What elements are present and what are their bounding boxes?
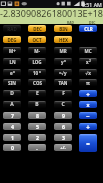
- button[interactable]: 2: [28, 134, 46, 141]
- button[interactable]: .: [28, 144, 46, 151]
- button[interactable]: TAN: [54, 79, 72, 86]
- staticText: 5: [36, 123, 39, 130]
- staticText: 0: [11, 144, 14, 151]
- staticText: A: [10, 101, 14, 108]
- staticText: RAD: [7, 26, 17, 32]
- staticText: x: [86, 59, 89, 65]
- button[interactable]: E: [28, 90, 46, 97]
- staticText: TAN: [58, 80, 68, 86]
- button[interactable]: Minus: [79, 112, 97, 119]
- staticText: BIN: [59, 26, 68, 32]
- button[interactable]: Plus: [79, 123, 97, 130]
- staticText: M-: [34, 48, 40, 54]
- staticText: C: [61, 101, 65, 108]
- staticText: 9:51 AM: [82, 1, 102, 8]
- button[interactable]: 7: [3, 112, 21, 119]
- button[interactable]: LOG: [28, 58, 46, 65]
- staticText: 7: [11, 112, 14, 119]
- button[interactable]: Equals: [79, 134, 97, 152]
- button[interactable]: SIN: [3, 79, 21, 86]
- staticText: 3: [62, 134, 65, 141]
- staticText: 10: [33, 70, 39, 76]
- staticText: ÷: [86, 90, 90, 97]
- staticText: DEC: [33, 26, 42, 32]
- staticText: 2: [89, 59, 91, 63]
- button[interactable]: A: [3, 101, 21, 108]
- button[interactable]: CLR: [79, 25, 97, 32]
- staticText: D: [10, 90, 14, 97]
- staticText: 2: [36, 134, 39, 141]
- staticText: LN: [9, 59, 16, 65]
- button[interactable]: COS: [28, 79, 46, 86]
- button[interactable]: MR: [54, 47, 72, 54]
- button[interactable]: M+: [3, 47, 21, 54]
- button[interactable]: 4: [3, 123, 21, 130]
- button[interactable]: ˣ√y: [54, 69, 72, 76]
- staticText: 9: [62, 112, 65, 119]
- staticText: F: [62, 90, 65, 97]
- staticText: MR: [59, 48, 67, 54]
- button[interactable]: MC: [79, 47, 97, 54]
- staticText: DEC: [89, 20, 96, 24]
- staticText: 8: [36, 112, 39, 119]
- staticText: DEG: [7, 37, 17, 43]
- staticText: HEX: [59, 37, 68, 43]
- button[interactable]: x: [79, 58, 97, 65]
- staticText: ˣ√y: [59, 70, 67, 76]
- button[interactable]: F: [54, 90, 72, 97]
- button[interactable]: 6: [54, 123, 72, 130]
- button[interactable]: LN: [3, 58, 21, 65]
- staticText: e: [10, 70, 13, 76]
- staticText: +/-: [60, 145, 66, 151]
- staticText: RAD: [67, 20, 74, 24]
- button[interactable]: B: [28, 101, 46, 108]
- button[interactable]: RAD: [3, 25, 21, 32]
- staticText: LOG: [32, 59, 42, 65]
- staticText: =: [86, 139, 90, 147]
- staticText: ×: [86, 101, 90, 108]
- button[interactable]: Multiply: [79, 101, 97, 108]
- button[interactable]: OCT: [28, 36, 46, 43]
- staticText: E: [36, 90, 39, 97]
- staticText: -2.83090826180013E+18: [0, 7, 103, 19]
- button[interactable]: 10: [28, 69, 46, 76]
- button[interactable]: e: [3, 69, 21, 76]
- staticText: 6: [62, 123, 65, 130]
- button[interactable]: π: [79, 79, 97, 86]
- button[interactable]: DEC: [28, 25, 46, 32]
- staticText: +: [86, 123, 90, 130]
- staticText: √x: [85, 70, 91, 76]
- staticText: MC: [84, 48, 92, 54]
- button[interactable]: 8: [28, 112, 46, 119]
- staticText: −: [86, 112, 90, 119]
- button[interactable]: 5: [28, 123, 46, 130]
- staticText: x: [39, 70, 41, 74]
- staticText: .: [36, 144, 38, 151]
- button[interactable]: 0: [3, 144, 21, 151]
- button[interactable]: 3: [54, 134, 72, 141]
- button[interactable]: M-: [28, 47, 46, 54]
- button[interactable]: Divide: [79, 90, 97, 97]
- staticText: CLR: [84, 26, 93, 32]
- staticText: x: [64, 59, 66, 63]
- staticText: SIN: [8, 80, 16, 86]
- button[interactable]: √x: [79, 69, 97, 76]
- button[interactable]: C: [54, 101, 72, 108]
- button[interactable]: 1: [3, 134, 21, 141]
- staticText: B: [35, 101, 39, 108]
- staticText: y: [61, 59, 64, 65]
- staticText: π: [86, 79, 90, 86]
- button[interactable]: DEG: [3, 36, 21, 43]
- staticText: OCT: [32, 37, 42, 43]
- button[interactable]: y: [54, 58, 72, 65]
- button[interactable]: HEX: [54, 36, 72, 43]
- button[interactable]: 9: [54, 112, 72, 119]
- staticText: COS: [33, 80, 42, 86]
- button[interactable]: BIN: [54, 25, 72, 32]
- button[interactable]: D: [3, 90, 21, 97]
- staticText: x: [13, 70, 15, 74]
- button[interactable]: +/-: [54, 144, 72, 151]
- staticText: M+: [9, 48, 16, 54]
- staticText: 1: [11, 134, 14, 141]
- staticText: 4: [11, 123, 14, 130]
